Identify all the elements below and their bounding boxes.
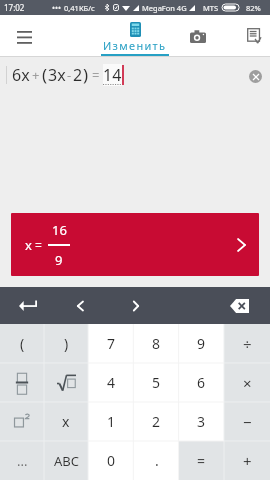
staticText: 0,41КБ/с bbox=[64, 3, 95, 13]
staticText: 4 bbox=[107, 373, 116, 392]
button[interactable]: 1 bbox=[88, 402, 134, 441]
button[interactable]: Menu bbox=[0, 15, 48, 57]
button[interactable]: Camera bbox=[180, 15, 216, 57]
staticText: 9 bbox=[55, 251, 63, 269]
staticText: 6x bbox=[12, 64, 30, 86]
staticText: . bbox=[155, 451, 159, 470]
staticText: Изменить bbox=[103, 38, 167, 53]
staticText: − bbox=[243, 412, 252, 432]
staticText: ) bbox=[64, 334, 69, 353]
staticText: ( bbox=[20, 334, 25, 353]
button[interactable]: Solutions bbox=[238, 15, 270, 57]
button[interactable]: = bbox=[179, 441, 224, 480]
button[interactable]: 4 bbox=[88, 363, 134, 402]
staticText: 16 bbox=[52, 221, 67, 239]
staticText: 7 bbox=[107, 334, 116, 353]
button[interactable]: x bbox=[44, 402, 88, 441]
button[interactable]: + bbox=[224, 441, 270, 480]
button[interactable]: 3 bbox=[179, 402, 224, 441]
button[interactable]: 5 bbox=[134, 363, 179, 402]
staticText: 8 bbox=[152, 334, 161, 353]
button[interactable]: 9 bbox=[179, 324, 224, 363]
staticText: 17:02 bbox=[4, 2, 25, 13]
staticText: ABC bbox=[54, 452, 79, 470]
staticText: 14 bbox=[103, 64, 122, 86]
button[interactable]: Previous bbox=[62, 287, 98, 324]
staticText: = bbox=[92, 66, 100, 84]
button[interactable]: − bbox=[224, 402, 270, 441]
staticText: = bbox=[197, 451, 206, 470]
button[interactable]: x bbox=[11, 213, 259, 276]
button[interactable]: Изменить bbox=[101, 15, 169, 57]
button[interactable]: ( bbox=[0, 324, 44, 363]
staticText: 9 bbox=[197, 334, 206, 353]
staticText: ••• bbox=[52, 2, 62, 13]
button[interactable]: ÷ bbox=[224, 324, 270, 363]
button[interactable]: ) bbox=[44, 324, 88, 363]
button[interactable]: 2 bbox=[134, 402, 179, 441]
button[interactable]: Enter bbox=[6, 287, 50, 324]
button[interactable]: 8 bbox=[134, 324, 179, 363]
button[interactable] bbox=[0, 363, 44, 402]
staticText: 2 bbox=[152, 412, 161, 431]
staticText: 0 bbox=[107, 451, 116, 470]
staticText: ÷ bbox=[243, 334, 252, 354]
button[interactable]: 6 bbox=[179, 363, 224, 402]
button[interactable]: ABC bbox=[44, 441, 88, 480]
staticText: MegaFon 4G bbox=[142, 3, 187, 13]
button[interactable]: ... bbox=[0, 441, 44, 480]
staticText: 82% bbox=[246, 3, 261, 13]
button[interactable] bbox=[0, 402, 44, 441]
staticText: MTS bbox=[203, 3, 219, 13]
staticText: 5 bbox=[152, 373, 161, 392]
button[interactable] bbox=[44, 363, 88, 402]
staticText: + bbox=[32, 66, 40, 84]
staticText: + bbox=[243, 451, 252, 471]
staticText: ... bbox=[17, 452, 28, 470]
staticText: x bbox=[62, 412, 70, 431]
staticText: 2 bbox=[73, 64, 83, 86]
staticText: x bbox=[25, 236, 32, 254]
staticText: - bbox=[67, 66, 72, 84]
staticText: 3x bbox=[48, 64, 66, 86]
button[interactable]: × bbox=[224, 363, 270, 402]
staticText: = bbox=[35, 237, 42, 253]
staticText: 3 bbox=[197, 412, 206, 431]
staticText: ( bbox=[42, 63, 48, 86]
button[interactable]: Clear bbox=[249, 70, 262, 83]
staticText: 1 bbox=[107, 412, 116, 431]
staticText: × bbox=[243, 373, 252, 393]
staticText: 6 bbox=[197, 373, 206, 392]
button[interactable]: 7 bbox=[88, 324, 134, 363]
button[interactable]: . bbox=[134, 441, 179, 480]
button[interactable]: Backspace bbox=[221, 287, 257, 324]
button[interactable]: Next bbox=[118, 287, 154, 324]
button[interactable]: 0 bbox=[88, 441, 134, 480]
staticText: ) bbox=[83, 63, 89, 86]
